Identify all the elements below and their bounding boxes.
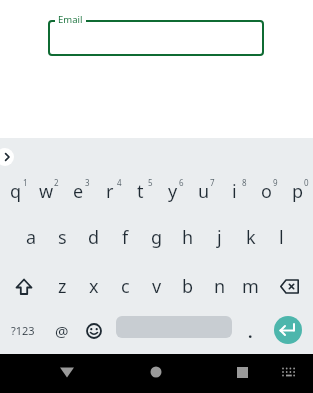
button[interactable] <box>0 148 14 166</box>
button[interactable] <box>53 358 81 386</box>
button[interactable]: l <box>266 215 297 260</box>
staticText: 5 <box>148 177 153 188</box>
button[interactable]: . <box>235 309 266 354</box>
button[interactable]: ?123 <box>0 308 45 353</box>
staticText: y <box>168 179 178 204</box>
button[interactable]: u <box>188 169 219 214</box>
staticText: 7 <box>210 177 215 188</box>
staticText: c <box>121 274 130 299</box>
staticText: 9 <box>273 177 278 188</box>
staticText: 1 <box>23 177 28 188</box>
button[interactable]: d <box>78 215 109 260</box>
button[interactable]: v <box>141 264 172 309</box>
button[interactable]: z <box>47 264 78 309</box>
staticText: Email <box>58 13 83 26</box>
staticText: 0 <box>304 177 309 188</box>
staticText: b <box>182 274 194 299</box>
button[interactable]: h <box>172 215 203 260</box>
button[interactable]: n <box>204 264 235 309</box>
staticText: l <box>279 225 284 250</box>
staticText: x <box>89 274 99 299</box>
staticText: a <box>26 225 37 250</box>
staticText: . <box>248 321 253 343</box>
button[interactable] <box>116 316 232 338</box>
button[interactable]: f <box>110 215 141 260</box>
staticText: p <box>292 179 304 204</box>
staticText: k <box>246 225 256 250</box>
staticText: t <box>137 179 144 204</box>
staticText: n <box>214 274 226 299</box>
staticText: 3 <box>85 177 90 188</box>
button[interactable] <box>48 20 264 56</box>
button[interactable]: e <box>63 169 94 214</box>
button[interactable]: b <box>172 264 203 309</box>
button[interactable] <box>276 360 300 384</box>
staticText: 4 <box>117 177 122 188</box>
staticText: s <box>58 225 67 250</box>
button[interactable]: r <box>94 169 125 214</box>
button[interactable]: j <box>204 215 235 260</box>
staticText: v <box>152 274 162 299</box>
staticText: z <box>58 274 67 299</box>
button[interactable] <box>228 358 256 386</box>
staticText: f <box>122 225 129 250</box>
button[interactable]: w <box>31 169 62 214</box>
button[interactable]: m <box>235 264 266 309</box>
staticText: h <box>182 225 194 250</box>
button[interactable]: a <box>16 215 47 260</box>
button[interactable]: p <box>282 169 313 214</box>
staticText: ?123 <box>11 323 35 338</box>
button[interactable]: k <box>235 215 266 260</box>
staticText: o <box>261 179 272 204</box>
button[interactable]: s <box>47 215 78 260</box>
button[interactable] <box>0 264 47 309</box>
button[interactable]: c <box>110 264 141 309</box>
button[interactable] <box>142 358 170 386</box>
staticText: 6 <box>179 177 184 188</box>
button[interactable]: o <box>251 169 282 214</box>
button[interactable]: t <box>125 169 156 214</box>
staticText: @ <box>55 321 69 341</box>
staticText: g <box>151 225 163 250</box>
button[interactable]: @ <box>46 308 77 353</box>
button[interactable]: i <box>219 169 250 214</box>
staticText: j <box>217 225 222 250</box>
staticText: m <box>242 274 259 299</box>
button[interactable]: y <box>157 169 188 214</box>
button[interactable]: g <box>141 215 172 260</box>
button[interactable]: q <box>0 169 31 214</box>
button[interactable] <box>266 264 313 309</box>
staticText: u <box>198 179 210 204</box>
staticText: 2 <box>54 177 59 188</box>
staticText: q <box>10 179 22 204</box>
button[interactable] <box>78 308 109 353</box>
staticText: r <box>106 179 114 204</box>
button[interactable]: x <box>78 264 109 309</box>
staticText: e <box>73 179 84 204</box>
staticText: w <box>39 179 54 204</box>
staticText: i <box>232 179 237 204</box>
staticText: d <box>88 225 100 250</box>
staticText: 8 <box>242 177 247 188</box>
button[interactable] <box>274 316 302 344</box>
